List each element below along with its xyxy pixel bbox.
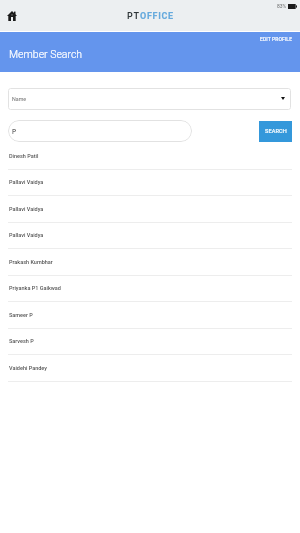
staticText: Name: [12, 96, 27, 102]
staticText: Dinesh Patil: [9, 153, 39, 159]
staticText: Prakash Kumbhar: [9, 259, 53, 265]
button[interactable]: Pallavi Vaidya: [0, 223, 300, 249]
button[interactable]: Sarvesh P: [0, 329, 300, 355]
staticText: OFFICE: [140, 11, 174, 22]
button[interactable]: Vaidehi Pandey: [0, 356, 300, 382]
staticText: EDIT PROFILE: [260, 36, 293, 42]
button[interactable]: Pallavi Vaidya: [0, 170, 300, 196]
staticText: Sarvesh P: [9, 338, 34, 344]
staticText: SEARCH: [265, 128, 287, 135]
button[interactable]: SEARCH: [259, 121, 292, 142]
button[interactable]: Priyanka P1 Gaikwad: [0, 276, 300, 302]
staticText: P: [12, 128, 17, 136]
button[interactable]: Prakash Kumbhar: [0, 250, 300, 276]
staticText: PT: [127, 11, 140, 22]
staticText: Pallavi Vaidya: [9, 179, 44, 185]
button[interactable]: Dinesh Patil: [0, 144, 300, 170]
staticText: Sameer P: [9, 312, 33, 318]
staticText: Pallavi Vaidya: [9, 206, 44, 212]
button[interactable]: Home: [6, 10, 18, 22]
button[interactable]: Sameer P: [0, 303, 300, 329]
staticText: Pallavi Vaidya: [9, 232, 44, 238]
button[interactable]: Name: [8, 88, 291, 110]
button[interactable]: P: [8, 120, 192, 142]
staticText: 83%: [277, 3, 287, 9]
button[interactable]: EDIT PROFILE: [260, 36, 293, 42]
staticText: Priyanka P1 Gaikwad: [9, 285, 61, 291]
staticText: Vaidehi Pandey: [9, 365, 47, 371]
staticText: Member Search: [9, 48, 83, 60]
button[interactable]: Pallavi Vaidya: [0, 197, 300, 223]
